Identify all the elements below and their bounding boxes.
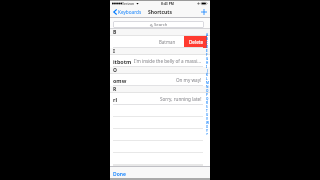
staticText: omw	[113, 77, 127, 84]
staticText: M	[206, 81, 209, 85]
button[interactable]: Keyboards	[110, 9, 145, 15]
staticText: H	[206, 61, 209, 65]
staticText: I	[206, 65, 208, 69]
staticText: J	[207, 69, 208, 73]
staticText: C	[206, 41, 208, 45]
staticText: 8:43 PM	[161, 1, 174, 6]
staticText: Shortcuts	[148, 9, 173, 16]
staticText: E	[206, 49, 208, 53]
staticText: Verizon	[122, 1, 135, 6]
staticText: On my way!	[176, 77, 202, 83]
staticText: Q	[206, 97, 209, 101]
staticText: W	[206, 121, 209, 125]
staticText: X	[206, 125, 208, 129]
staticText: O	[113, 67, 117, 74]
button[interactable]: Section index	[204, 33, 210, 135]
staticText: I'm inside the belly of a massi...	[134, 58, 202, 64]
staticText: B	[206, 37, 209, 41]
staticText: U	[206, 113, 209, 117]
staticText: Sorry, running late!	[160, 96, 202, 102]
staticText: B	[113, 29, 117, 36]
staticText: V	[206, 117, 208, 121]
staticText: L	[206, 77, 208, 81]
button[interactable]: Done	[110, 170, 130, 179]
staticText: Search	[154, 22, 168, 28]
staticText: T	[206, 109, 208, 113]
staticText: P	[206, 93, 208, 97]
staticText: Done	[113, 171, 126, 178]
staticText: rl	[113, 96, 118, 103]
button[interactable]: omw	[110, 74, 210, 86]
staticText: I	[113, 48, 115, 55]
staticText: R	[113, 86, 117, 93]
button[interactable]: Delete	[184, 36, 207, 48]
button[interactable]: itbotm	[110, 55, 210, 67]
staticText: S	[206, 105, 208, 109]
staticText: F	[206, 53, 208, 57]
staticText: R	[206, 101, 208, 105]
staticText: Keyboards	[118, 9, 142, 15]
staticText: Batman	[159, 39, 176, 45]
staticText: N	[206, 85, 209, 89]
staticText: K	[206, 73, 209, 77]
staticText: itbotm	[113, 58, 132, 65]
staticText: A	[206, 33, 209, 37]
button[interactable]: rl	[110, 93, 210, 105]
staticText: G	[206, 57, 209, 61]
staticText: O	[206, 89, 209, 93]
staticText: Y	[206, 129, 208, 133]
staticText: D	[206, 45, 209, 49]
button[interactable]: Search	[113, 21, 204, 28]
staticText: Delete	[189, 39, 203, 45]
staticText: Z	[206, 133, 208, 135]
button[interactable]: Add shortcut	[199, 7, 209, 17]
